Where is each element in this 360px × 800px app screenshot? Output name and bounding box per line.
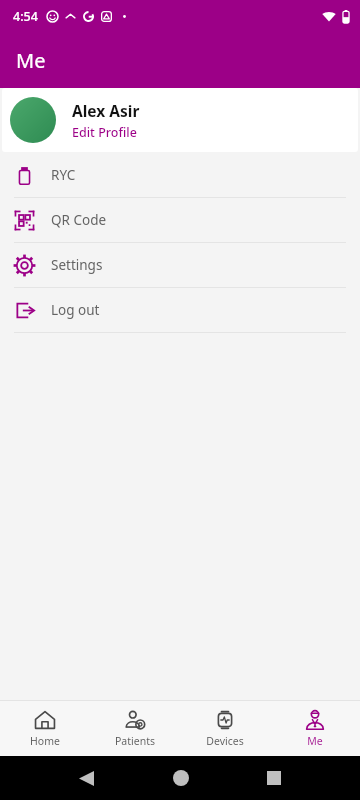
staticText: Me [307, 734, 323, 748]
button[interactable]: Devices [180, 700, 270, 756]
staticText: QR Code [51, 211, 107, 229]
staticText: Devices [206, 734, 244, 748]
button[interactable]: Log out [0, 288, 360, 332]
button[interactable]: Alex Asir [2, 88, 358, 152]
staticText: RYC [51, 166, 76, 184]
staticText: Me [16, 47, 46, 74]
staticText: Log out [51, 301, 100, 319]
staticText: Alex Asir [72, 100, 140, 121]
button[interactable]: Home [0, 700, 90, 756]
staticText: Edit Profile [72, 124, 137, 141]
button[interactable]: RYC [0, 153, 360, 197]
staticText: Patients [115, 734, 155, 748]
button[interactable]: Me [270, 700, 360, 756]
staticText: Home [30, 734, 60, 748]
button[interactable]: QR Code [0, 198, 360, 242]
button[interactable]: Settings [0, 243, 360, 287]
staticText: 4:54 [13, 8, 38, 25]
staticText: Settings [51, 256, 103, 274]
button[interactable]: Patients [90, 700, 180, 756]
